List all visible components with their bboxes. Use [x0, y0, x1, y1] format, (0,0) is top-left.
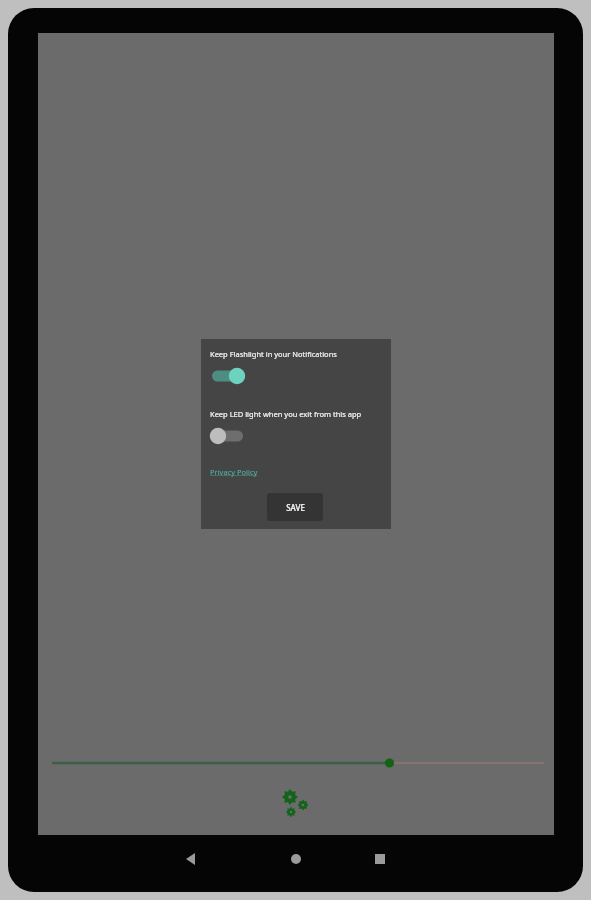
button[interactable]: Home — [280, 843, 312, 875]
staticText: Keep LED light when you exit from this a… — [210, 409, 362, 419]
button[interactable]: Settings — [276, 783, 316, 823]
staticText: Keep Flashlight in your Notifications — [210, 349, 337, 359]
button[interactable]: Privacy Policy — [210, 467, 258, 477]
button[interactable]: SAVE — [267, 493, 323, 521]
button[interactable]: Recent apps — [364, 843, 396, 875]
button[interactable] — [207, 364, 247, 388]
staticText: SAVE — [286, 502, 305, 513]
button[interactable]: Back — [175, 843, 207, 875]
button[interactable] — [207, 424, 247, 448]
staticText: Privacy Policy — [210, 467, 258, 477]
button[interactable]: Brightness slider — [42, 751, 550, 775]
